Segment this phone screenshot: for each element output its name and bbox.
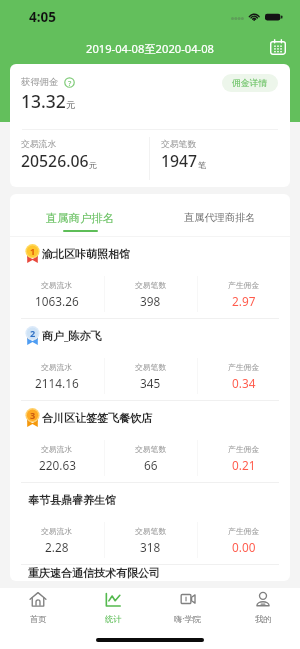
staticText: 元 [89,160,98,170]
button[interactable]: 嗨·学院 [150,588,225,628]
staticText: 交易笔数 [135,526,167,536]
staticText: 66 [144,457,158,473]
staticText: 1 [30,245,36,258]
staticText: 2114.16 [35,375,79,391]
button[interactable]: 奉节县鼎睿养生馆 [10,483,290,564]
staticText: 交易笔数 [135,280,167,290]
staticText: 交易笔数 [135,444,167,454]
staticText: 交易流水 [41,362,73,372]
staticText: 奉节县鼎睿养生馆 [28,493,116,507]
button[interactable]: 1 [10,237,290,318]
staticText: 笔 [198,160,207,170]
staticText: 0.21 [232,457,256,473]
button[interactable]: 3 [10,401,290,482]
staticText: 2.97 [232,293,256,309]
staticText: ? [68,78,72,88]
staticText: 220.63 [39,457,76,473]
button[interactable]: 直属代理商排名 [150,194,290,236]
staticText: 直属代理商排名 [184,211,256,224]
staticText: 渝北区咔萌照相馆 [42,247,130,261]
staticText: 0.34 [232,375,256,391]
staticText: 交易流水 [41,444,73,454]
staticText: 交易流水 [41,280,73,290]
staticText: 13.32 [21,89,66,113]
staticText: 1947 [161,150,198,172]
button[interactable]: 佣金详情 [222,74,278,92]
staticText: 1063.26 [35,293,79,309]
staticText: 20526.06 [21,150,89,172]
staticText: 直属商户排名 [46,211,114,225]
staticText: 产生佣金 [228,362,260,372]
staticText: 产生佣金 [228,526,260,536]
staticText: 合川区让签签飞餐饮店 [42,411,152,425]
button[interactable]: 重庆速合通信技术有限公司 [10,565,290,581]
staticText: 交易笔数 [161,139,197,150]
staticText: 首页 [30,614,47,624]
staticText: 我的 [255,614,272,624]
staticText: 交易流水 [41,526,73,536]
button[interactable]: 2 [10,319,290,400]
staticText: 4:05 [29,8,56,26]
button[interactable]: 直属商户排名 [10,194,150,236]
staticText: 交易笔数 [135,362,167,372]
button[interactable]: 首页 [0,588,75,628]
staticText: 重庆速合通信技术有限公司 [28,566,160,580]
staticText: 2019-04-08至2020-04-08 [86,41,214,56]
staticText: 0.00 [232,539,256,555]
staticText: 统计 [105,614,122,624]
staticText: 345 [140,375,161,391]
staticText: 交易流水 [21,139,57,150]
staticText: 产生佣金 [228,444,260,454]
staticText: 商户_陈亦飞 [42,328,102,343]
button[interactable]: Select date range [266,35,290,59]
staticText: 元 [66,99,76,111]
staticText: 2 [30,327,36,340]
staticText: 3 [30,409,36,422]
staticText: 318 [140,539,161,555]
staticText: 2.28 [45,539,69,555]
staticText: 获得佣金 [21,76,59,88]
staticText: 398 [140,293,161,309]
staticText: 嗨·学院 [174,613,202,624]
staticText: 佣金详情 [232,78,268,89]
button[interactable]: 统计 [75,588,150,628]
button[interactable]: 我的 [225,588,300,628]
staticText: 产生佣金 [228,280,260,290]
